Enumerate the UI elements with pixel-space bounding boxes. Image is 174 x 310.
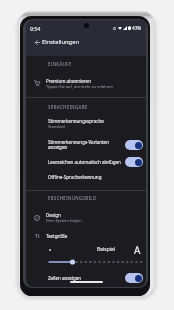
staticText: a (49, 247, 52, 252)
button[interactable]: Textgröße einstellen (46, 257, 146, 267)
button[interactable]: Design (26, 207, 146, 228)
button[interactable]: Leerzeichen automatisch einfügen (26, 155, 146, 169)
staticText: Tt (35, 233, 40, 239)
staticText: Premium abonnieren (46, 78, 91, 84)
button[interactable]: Offline-Spracherkennung (26, 170, 146, 183)
staticText: Stimmerkennungssprache (48, 118, 104, 124)
staticText: ERSCHEINUNGSBILD (48, 195, 97, 201)
staticText: Design (46, 212, 61, 218)
staticText: Offline-Spracherkennung (48, 174, 102, 180)
staticText: Zeilen anzeigen (48, 275, 123, 281)
staticText: 9:54 (30, 25, 41, 32)
staticText: SPRACHEINGABE (48, 104, 88, 110)
staticText: EINKÄUFE (48, 61, 72, 67)
staticText: Standard (48, 124, 65, 129)
staticText: Tippen Sie auf, um mehr zu erfahren (46, 84, 113, 89)
staticText: A (134, 243, 141, 256)
staticText: Einstellungen (42, 38, 80, 46)
staticText: Dem System folgen (46, 218, 82, 223)
staticText: Beispiel (97, 246, 116, 253)
staticText: Stimmerkennungs-Varianten anzeigen (48, 139, 123, 151)
button[interactable]: Premium abonnieren (26, 71, 146, 95)
button[interactable]: Stimmerkennungssprache (26, 118, 146, 133)
button[interactable]: Zurück (31, 36, 43, 48)
button[interactable]: Zeilen anzeigen (26, 271, 146, 284)
button[interactable]: Stimmerkennungs-Varianten anzeigen (26, 135, 146, 155)
staticText: Textgröße (46, 233, 68, 239)
button[interactable]: Tt (26, 230, 146, 242)
staticText: 43% (132, 25, 142, 31)
staticText: Leerzeichen automatisch einfügen (48, 159, 123, 165)
